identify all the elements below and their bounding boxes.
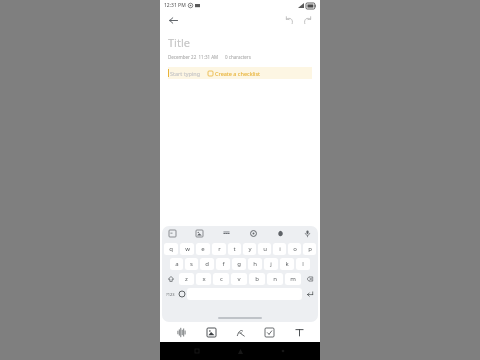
staticText: Create a checklist — [215, 70, 261, 77]
staticText: December 22 11:31 AM — [168, 54, 219, 60]
button[interactable]: k — [280, 258, 294, 270]
button[interactable]: j — [264, 258, 278, 270]
button[interactable]: o — [288, 243, 301, 255]
staticText: 12:31 PM — [164, 2, 186, 9]
staticText: d — [205, 260, 209, 268]
staticText: w — [185, 245, 190, 253]
button[interactable]: e — [196, 243, 210, 255]
staticText: m — [290, 275, 296, 283]
staticText: q — [169, 245, 173, 253]
staticText: e — [201, 245, 205, 253]
button[interactable]: y — [243, 243, 256, 255]
staticText: 0 characters — [225, 54, 251, 60]
button[interactable]: Create a checklist — [208, 70, 261, 77]
button[interactable]: m — [285, 273, 301, 285]
button[interactable]: ?123 — [163, 288, 177, 300]
button[interactable]: Clipboard — [167, 228, 178, 239]
staticText: x — [202, 275, 206, 283]
button[interactable]: r — [212, 243, 226, 255]
button[interactable]: Draw — [232, 324, 248, 340]
button[interactable]: h — [248, 258, 262, 270]
button[interactable]: Emoji — [177, 288, 186, 300]
staticText: c — [220, 275, 223, 283]
button[interactable]: Image — [194, 228, 205, 239]
button[interactable]: Voice input — [302, 228, 313, 239]
button[interactable]: q — [164, 243, 178, 255]
button[interactable]: s — [185, 258, 198, 270]
staticText: Title — [168, 35, 190, 50]
button[interactable]: x — [196, 273, 211, 285]
button[interactable]: g — [232, 258, 246, 270]
button[interactable]: d — [200, 258, 214, 270]
button[interactable]: Back — [277, 345, 289, 357]
staticText: i — [279, 245, 281, 253]
staticText: s — [190, 260, 193, 268]
button[interactable]: Text format — [291, 324, 307, 340]
button[interactable]: Back — [166, 13, 180, 27]
button[interactable]: Image — [203, 324, 219, 340]
staticText: g — [237, 260, 241, 268]
button[interactable]: n — [267, 273, 283, 285]
staticText: p — [308, 245, 312, 253]
staticText: j — [270, 260, 272, 268]
staticText: f — [222, 260, 225, 268]
staticText: n — [273, 275, 277, 283]
button[interactable]: Title — [168, 35, 312, 50]
button[interactable]: c — [213, 273, 229, 285]
button[interactable]: Redo — [300, 13, 314, 27]
staticText: o — [293, 245, 297, 253]
button[interactable]: Stickers — [275, 228, 286, 239]
button[interactable]: Settings — [248, 228, 259, 239]
button[interactable]: Audio — [173, 324, 189, 340]
staticText: h — [253, 260, 257, 268]
button[interactable]: f — [216, 258, 230, 270]
staticText: ?123 — [166, 292, 175, 297]
button[interactable]: Undo — [282, 13, 296, 27]
button[interactable]: b — [249, 273, 265, 285]
button[interactable]: p — [303, 243, 316, 255]
button[interactable]: Enter — [303, 288, 317, 300]
button[interactable]: Shift — [163, 273, 178, 285]
button[interactable]: Recents — [191, 345, 203, 357]
staticText: u — [263, 245, 267, 253]
button[interactable]: z — [179, 273, 194, 285]
staticText: k — [285, 260, 289, 268]
button[interactable]: v — [231, 273, 247, 285]
button[interactable]: a — [170, 258, 183, 270]
button[interactable]: u — [258, 243, 271, 255]
staticText: z — [185, 275, 188, 283]
button[interactable]: l — [296, 258, 310, 270]
staticText: l — [302, 260, 304, 268]
button[interactable]: Checklist — [261, 324, 277, 340]
staticText: a — [175, 260, 179, 268]
staticText: b — [255, 275, 259, 283]
button[interactable]: Home — [234, 345, 246, 357]
button[interactable]: w — [180, 243, 194, 255]
button[interactable]: Backspace — [302, 273, 317, 285]
staticText: t — [233, 245, 236, 253]
button[interactable]: t — [228, 243, 241, 255]
staticText: y — [248, 245, 252, 253]
staticText: r — [218, 245, 221, 253]
staticText: Start typing — [170, 70, 201, 77]
button[interactable]: i — [273, 243, 286, 255]
button[interactable]: GIF — [221, 228, 232, 239]
staticText: v — [237, 275, 241, 283]
